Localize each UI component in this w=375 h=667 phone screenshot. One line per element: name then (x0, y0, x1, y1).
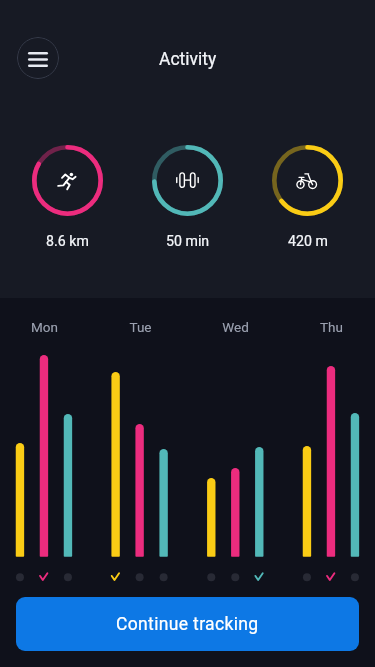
staticText: 420 m (288, 233, 328, 250)
staticText: 50 min (166, 233, 210, 250)
staticText: 8.6 km (46, 233, 89, 250)
button[interactable]: 420 m (272, 145, 343, 216)
button[interactable]: 8.6 km (32, 145, 103, 216)
staticText: Thu (320, 319, 343, 335)
staticText: Activity (159, 49, 217, 70)
button[interactable]: 50 min (152, 145, 223, 216)
staticText: Continue tracking (116, 614, 259, 635)
staticText: Wed (222, 319, 249, 335)
staticText: Mon (31, 319, 58, 335)
button[interactable]: Continue tracking (16, 597, 359, 651)
button[interactable]: Menu (17, 37, 59, 79)
staticText: Tue (129, 319, 152, 335)
